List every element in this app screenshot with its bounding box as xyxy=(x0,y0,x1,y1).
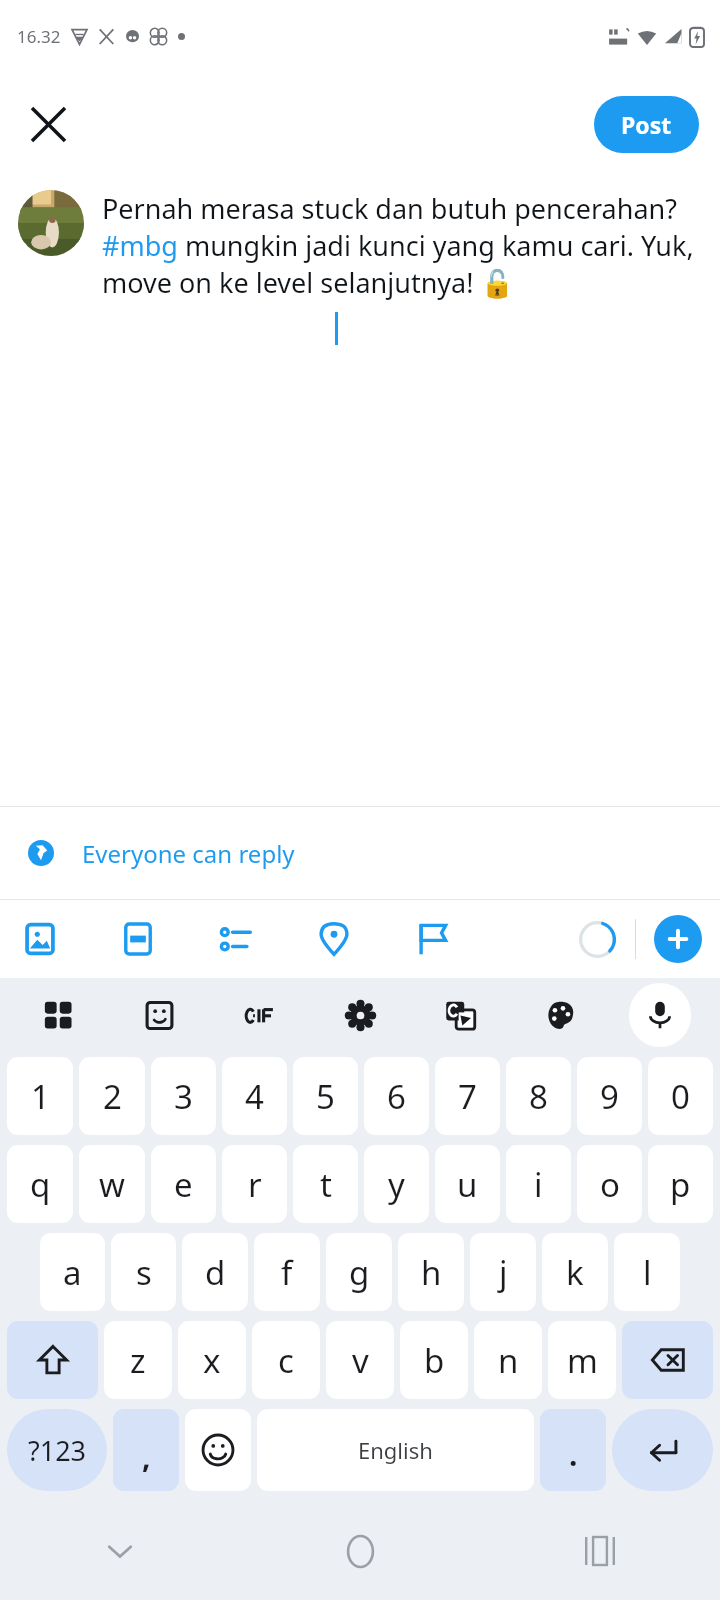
staticText: t xyxy=(320,1162,332,1207)
staticText: n xyxy=(498,1338,519,1383)
button[interactable]: Enter xyxy=(612,1409,713,1491)
button[interactable]: Recent apps xyxy=(480,1502,720,1600)
staticText: q xyxy=(30,1162,51,1207)
button[interactable]: 7 xyxy=(435,1057,500,1135)
staticText: 1 xyxy=(31,1074,50,1119)
staticText: r xyxy=(248,1162,262,1207)
button[interactable]: 0 xyxy=(648,1057,713,1135)
staticText: v xyxy=(352,1338,369,1383)
button[interactable]: Everyone can reply xyxy=(0,807,720,899)
button[interactable]: e xyxy=(151,1145,216,1223)
staticText: y xyxy=(388,1162,405,1207)
button[interactable]: h xyxy=(398,1233,464,1311)
staticText: b xyxy=(424,1338,445,1383)
button[interactable]: z xyxy=(104,1321,172,1399)
button[interactable]: Character count xyxy=(573,915,621,963)
staticText: 4 xyxy=(245,1074,264,1119)
staticText: 0 xyxy=(671,1074,690,1119)
button[interactable]: u xyxy=(435,1145,500,1223)
staticText: h xyxy=(421,1250,442,1295)
button[interactable]: Settings xyxy=(310,978,410,1052)
button[interactable]: Stickers xyxy=(109,978,210,1052)
button[interactable]: o xyxy=(577,1145,642,1223)
staticText: d xyxy=(205,1250,226,1295)
button[interactable]: Voice input xyxy=(629,983,691,1047)
button[interactable]: w xyxy=(79,1145,145,1223)
button[interactable]: d xyxy=(182,1233,248,1311)
button[interactable]: Theme xyxy=(510,978,610,1052)
button[interactable]: f xyxy=(254,1233,320,1311)
button[interactable]: English xyxy=(257,1409,534,1491)
button[interactable]: Emoji xyxy=(185,1409,251,1491)
button[interactable]: 3 xyxy=(151,1057,216,1135)
button[interactable]: Add poll xyxy=(212,915,260,963)
button[interactable]: 1 xyxy=(7,1057,73,1135)
staticText: g xyxy=(349,1250,370,1295)
staticText: w xyxy=(99,1162,125,1207)
button[interactable]: Backspace xyxy=(622,1321,713,1399)
button[interactable]: Add photo xyxy=(16,915,64,963)
button[interactable]: ?123 xyxy=(7,1409,107,1491)
staticText: s xyxy=(136,1250,152,1295)
button[interactable]: a xyxy=(40,1233,105,1311)
staticText: 16.32 xyxy=(17,25,61,48)
button[interactable]: p xyxy=(648,1145,713,1223)
staticText: . xyxy=(569,1434,578,1475)
button[interactable]: 9 xyxy=(577,1057,642,1135)
staticText: c xyxy=(278,1338,294,1383)
staticText: j xyxy=(499,1250,508,1295)
staticText: l xyxy=(643,1250,652,1295)
button[interactable]: Home xyxy=(240,1502,480,1600)
staticText: ?123 xyxy=(28,1432,87,1469)
button[interactable]: 4 xyxy=(222,1057,287,1135)
button[interactable]: GIF xyxy=(210,978,310,1052)
button[interactable]: Hide keyboard xyxy=(0,1502,240,1600)
button[interactable]: l xyxy=(614,1233,680,1311)
staticText: , xyxy=(142,1436,151,1477)
button[interactable]: j xyxy=(470,1233,536,1311)
button[interactable]: 5 xyxy=(293,1057,358,1135)
button[interactable]: Community note xyxy=(408,915,456,963)
button[interactable]: 8 xyxy=(506,1057,571,1135)
button[interactable]: Add post xyxy=(654,915,702,963)
button[interactable]: g xyxy=(326,1233,392,1311)
button[interactable]: y xyxy=(364,1145,429,1223)
staticText: m xyxy=(567,1338,598,1383)
button[interactable]: t xyxy=(293,1145,358,1223)
button[interactable]: Add GIF xyxy=(114,915,162,963)
button[interactable]: Add location xyxy=(310,915,358,963)
staticText: 8 xyxy=(529,1074,548,1119)
button[interactable]: s xyxy=(111,1233,176,1311)
button[interactable]: Clipboard xyxy=(8,978,109,1052)
staticText: 3 xyxy=(174,1074,193,1119)
button[interactable]: r xyxy=(222,1145,287,1223)
staticText: e xyxy=(174,1162,193,1207)
button[interactable]: , xyxy=(113,1409,179,1491)
button[interactable]: Post xyxy=(594,96,699,153)
staticText: a xyxy=(63,1250,82,1295)
button[interactable]: . xyxy=(540,1409,606,1491)
button[interactable]: b xyxy=(400,1321,468,1399)
staticText: i xyxy=(534,1162,543,1207)
staticText: z xyxy=(130,1338,146,1383)
staticText: o xyxy=(600,1162,620,1207)
button[interactable]: m xyxy=(548,1321,616,1399)
button[interactable]: 6 xyxy=(364,1057,429,1135)
button[interactable]: Translate xyxy=(410,978,510,1052)
staticText: 5 xyxy=(316,1074,335,1119)
button[interactable]: x xyxy=(178,1321,246,1399)
button[interactable]: k xyxy=(542,1233,608,1311)
button[interactable]: c xyxy=(252,1321,320,1399)
staticText: p xyxy=(670,1162,691,1207)
staticText: 2 xyxy=(103,1074,122,1119)
staticText: f xyxy=(281,1250,293,1295)
button[interactable]: i xyxy=(506,1145,571,1223)
staticText: 7 xyxy=(458,1074,477,1119)
button[interactable]: n xyxy=(474,1321,542,1399)
staticText: k xyxy=(566,1250,584,1295)
button[interactable]: q xyxy=(7,1145,73,1223)
button[interactable]: v xyxy=(326,1321,394,1399)
button[interactable]: 2 xyxy=(79,1057,145,1135)
button[interactable]: Shift xyxy=(7,1321,98,1399)
button[interactable]: Close xyxy=(11,87,85,161)
